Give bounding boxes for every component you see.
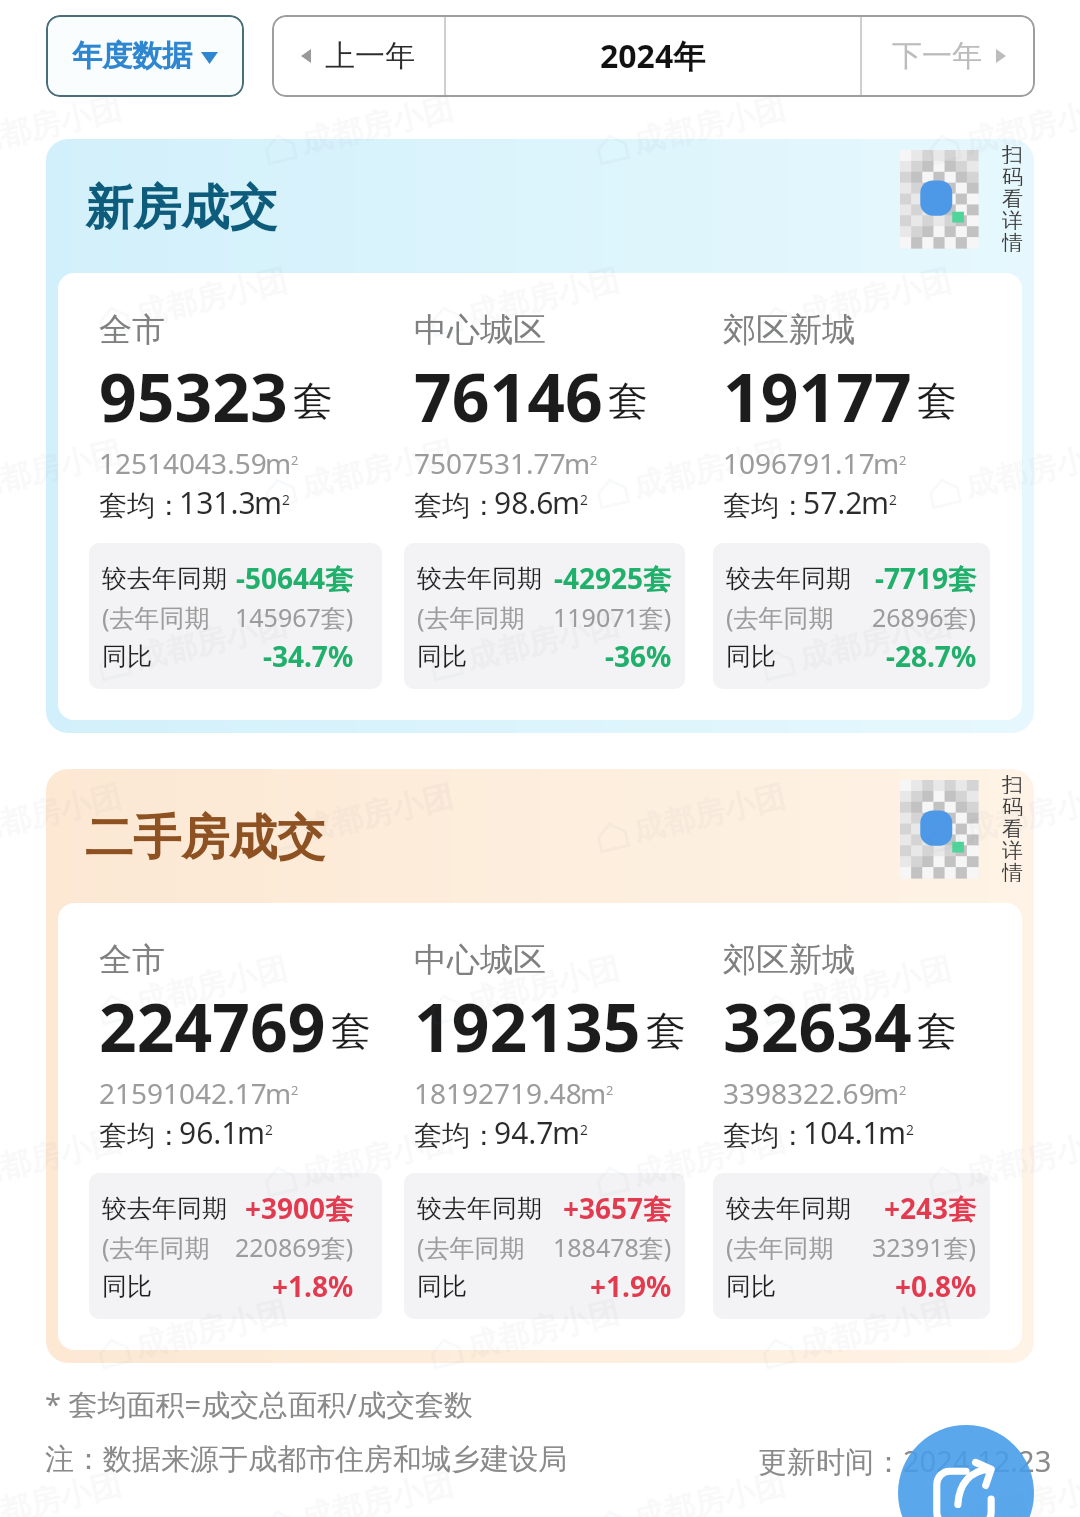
staticText: 成都房小团 [297, 433, 457, 506]
staticText: 较去年同期 [417, 1193, 542, 1224]
staticText: 成都房小团 [297, 1121, 457, 1194]
staticText: m [878, 1112, 907, 1153]
staticText: m [873, 1074, 900, 1112]
staticText: 成都房小团 [463, 261, 623, 334]
staticText: 32634 [723, 981, 912, 1071]
staticText: 成都房小团 [629, 1465, 789, 1517]
staticText: 57.2 [803, 482, 863, 523]
staticText: 2 [580, 490, 588, 509]
staticText: 2 [580, 1120, 588, 1139]
staticText: 成都房小团 [297, 89, 457, 162]
button[interactable]: Scan QR code for details [900, 150, 978, 248]
staticText: 成都房小团 [629, 433, 789, 506]
staticText: 套均： [723, 1118, 807, 1153]
staticText: 95323 [99, 351, 288, 441]
staticText: 同比 [726, 1271, 776, 1302]
staticText: 2 [889, 490, 897, 509]
staticText: 76146 [414, 351, 603, 441]
staticText: 21591042.17 [99, 1074, 267, 1112]
staticText: 看 [1002, 186, 1023, 208]
staticText: (去年同期 [417, 1230, 525, 1264]
staticText: 2 [606, 1081, 614, 1099]
button[interactable]: Share [898, 1425, 1034, 1517]
staticText: 套均： [99, 1118, 183, 1153]
staticText: 同比 [102, 641, 152, 672]
staticText: 较去年同期 [102, 1193, 227, 1224]
staticText: 12514043.59 [99, 444, 267, 482]
staticText: -34.7% [263, 637, 354, 675]
staticText: (去年同期 [726, 600, 834, 634]
staticText: m [861, 482, 890, 523]
staticText: +1.9% [590, 1267, 672, 1305]
staticText: 情 [1002, 230, 1023, 252]
staticText: 套均： [414, 1118, 498, 1153]
staticText: 套 [608, 376, 648, 426]
button[interactable]: 新房成交 [46, 139, 1034, 733]
staticText: 下一年 [892, 37, 982, 75]
staticText: 同比 [417, 1271, 467, 1302]
staticText: 7507531.77 [414, 444, 566, 482]
staticText: 26896套) [872, 600, 977, 634]
staticText: 二手房成交 [85, 808, 325, 868]
staticText: 套均： [414, 488, 498, 523]
staticText: 成都房小团 [297, 1465, 457, 1517]
staticText: 成都房小团 [0, 1121, 125, 1194]
staticText: 套 [293, 376, 333, 426]
staticText: 成都房小团 [795, 261, 955, 334]
staticText: m [237, 1112, 266, 1153]
staticText: -36% [605, 637, 672, 675]
staticText: 96.1 [179, 1112, 239, 1153]
staticText: 套均： [99, 488, 183, 523]
staticText: 成都房小团 [795, 605, 955, 678]
button[interactable]: 下一年 [862, 15, 1035, 97]
staticText: 131.3 [179, 482, 256, 523]
staticText: 成都房小团 [0, 89, 125, 162]
staticText: 码 [1002, 164, 1023, 186]
button[interactable]: Scan QR code for details [900, 780, 978, 878]
staticText: 上一年 [325, 37, 415, 75]
staticText: 成都房小团 [131, 1293, 291, 1366]
staticText: 中心城区 [414, 309, 546, 351]
staticText: 2 [899, 1081, 907, 1099]
staticText: 2 [291, 1081, 299, 1099]
staticText: 192135 [414, 981, 641, 1071]
staticText: 成都房小团 [961, 433, 1080, 506]
staticText: 全市 [99, 939, 165, 981]
staticText: 全市 [99, 309, 165, 351]
staticText: m [580, 1074, 607, 1112]
staticText: 2024年 [600, 34, 706, 78]
staticText: (去年同期 [417, 600, 525, 634]
staticText: 注：数据来源于成都市住房和城乡建设局 [45, 1441, 567, 1478]
button[interactable]: 2024年 [446, 15, 860, 97]
staticText: 郊区新城 [723, 309, 855, 351]
staticText: 中心城区 [414, 939, 546, 981]
staticText: -42925套 [554, 559, 672, 597]
staticText: 2 [282, 490, 290, 509]
staticText: m [873, 444, 900, 482]
staticText: 套 [917, 1006, 957, 1056]
staticText: 成都房小团 [961, 777, 1080, 850]
staticText: 成都房小团 [629, 1121, 789, 1194]
staticText: 成都房小团 [463, 949, 623, 1022]
staticText: m [254, 482, 283, 523]
staticText: +3657套 [563, 1189, 672, 1227]
staticText: 2 [291, 451, 299, 469]
staticText: 较去年同期 [102, 563, 227, 594]
staticText: 224769 [99, 981, 326, 1071]
staticText: 成都房小团 [0, 433, 125, 506]
staticText: 详 [1002, 838, 1023, 860]
staticText: 19177 [723, 351, 912, 441]
staticText: 104.1 [803, 1112, 880, 1153]
staticText: 145967套) [235, 600, 354, 634]
staticText: 详 [1002, 208, 1023, 230]
staticText: 情 [1002, 860, 1023, 882]
staticText: 成都房小团 [131, 949, 291, 1022]
button[interactable]: 二手房成交 [46, 769, 1034, 1363]
staticText: 220869套) [235, 1230, 354, 1264]
button[interactable]: 上一年 [272, 15, 444, 97]
button[interactable]: 年度数据 [46, 15, 244, 97]
staticText: 码 [1002, 794, 1023, 816]
staticText: 成都房小团 [463, 1293, 623, 1366]
staticText: +243套 [884, 1189, 977, 1227]
